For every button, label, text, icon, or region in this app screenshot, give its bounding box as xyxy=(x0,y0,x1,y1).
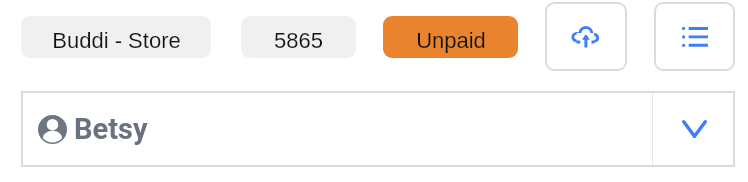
staticText: Betsy xyxy=(74,112,148,146)
button[interactable]: List view xyxy=(654,2,735,71)
button[interactable]: Unpaid xyxy=(383,16,518,58)
staticText: 5865 xyxy=(274,28,323,53)
button[interactable]: Upload xyxy=(545,2,627,71)
button[interactable]: 5865 xyxy=(241,16,356,58)
button[interactable]: Expand row xyxy=(653,91,735,167)
staticText: Buddi - Store xyxy=(52,28,181,53)
staticText: Unpaid xyxy=(416,28,486,53)
button[interactable]: Buddi - Store xyxy=(21,16,211,58)
button[interactable]: Betsy xyxy=(21,91,652,167)
